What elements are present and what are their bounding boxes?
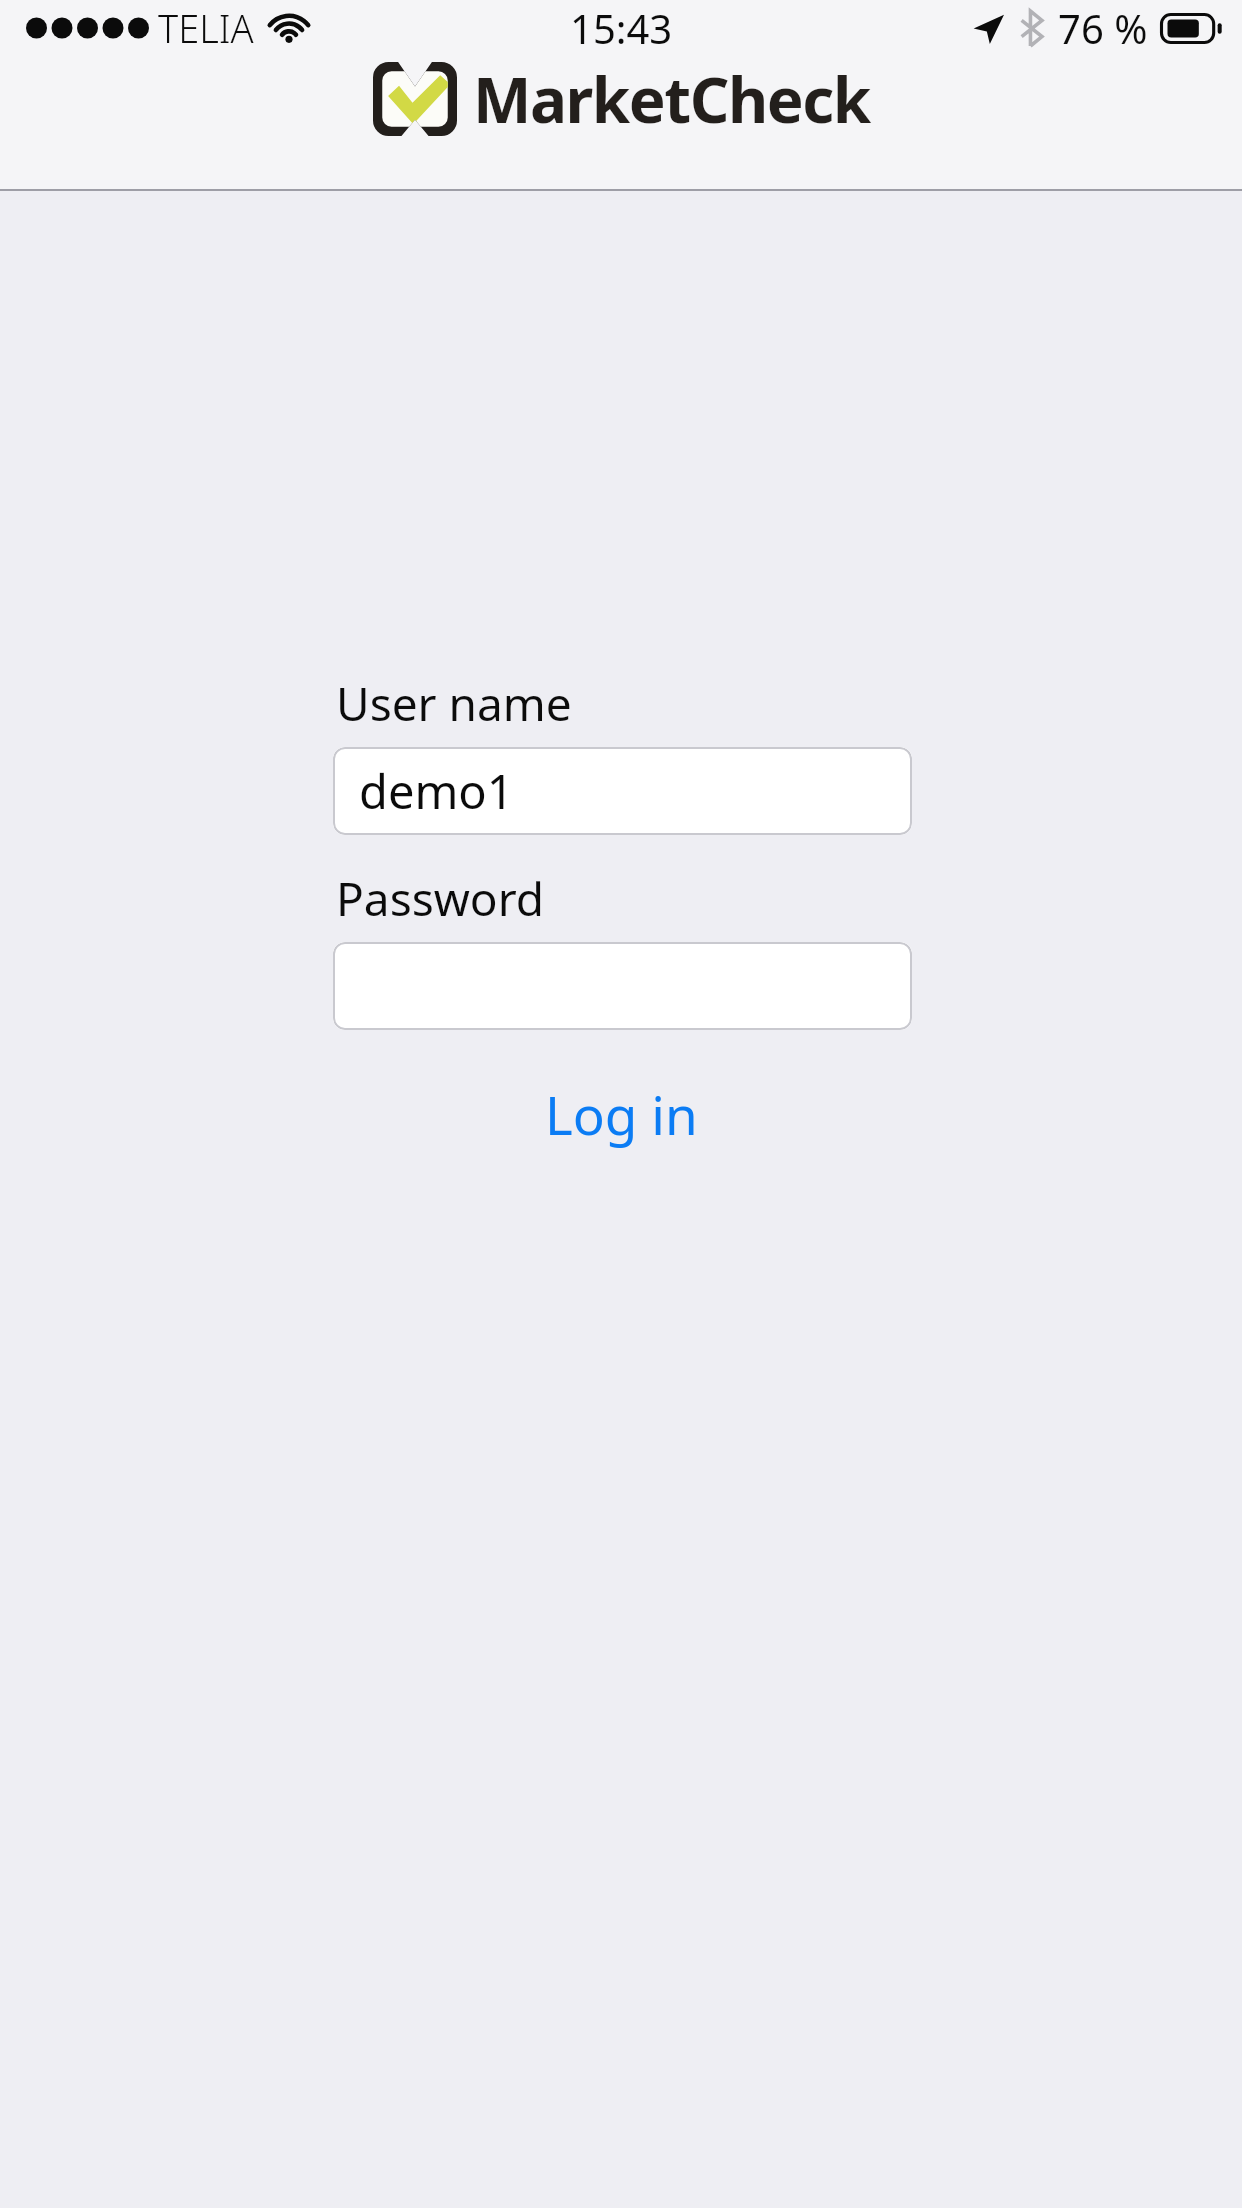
staticText: User name: [336, 672, 572, 735]
staticText: Log in: [545, 1078, 698, 1150]
staticText: TELIA: [158, 2, 254, 54]
staticText: demo1: [359, 759, 514, 823]
staticText: 76 %: [1058, 1, 1148, 55]
button[interactable]: [333, 942, 912, 1030]
button[interactable]: Log in: [0, 1074, 1242, 1154]
staticText: 15:43: [570, 1, 673, 55]
staticText: MarketCheck: [473, 57, 870, 141]
button[interactable]: demo1: [333, 747, 912, 835]
staticText: Password: [336, 867, 545, 930]
